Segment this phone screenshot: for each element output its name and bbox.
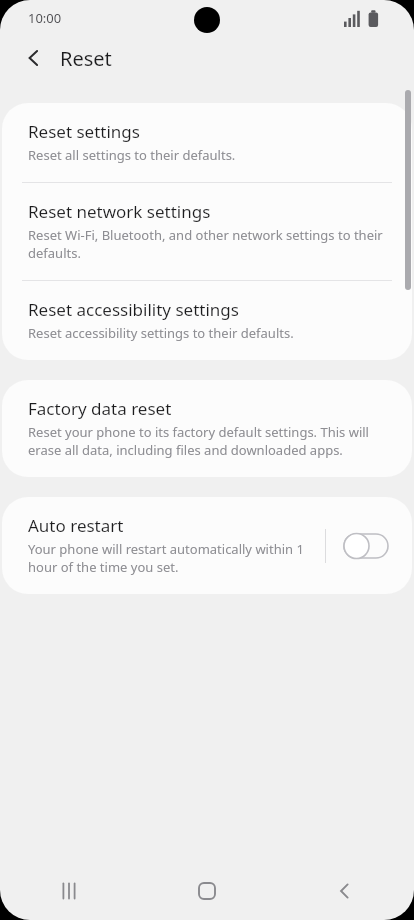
staticText: Reset accessibility settings to their de… (28, 324, 294, 342)
button[interactable]: Reset accessibility settings (2, 281, 412, 360)
staticText: Reset Wi-Fi, Bluetooth, and other networ… (28, 226, 383, 262)
staticText: Factory data reset (28, 397, 172, 420)
staticText: 10:00 (28, 9, 62, 27)
button[interactable]: Recent apps (0, 862, 138, 920)
button[interactable]: Auto restart toggle (340, 526, 392, 566)
staticText: Reset (60, 45, 112, 72)
staticText: Reset all settings to their defaults. (28, 146, 236, 164)
button[interactable]: Back (276, 862, 414, 920)
button[interactable]: Home (138, 862, 276, 920)
staticText: Reset accessibility settings (28, 298, 239, 321)
staticText: Your phone will restart automatically wi… (28, 540, 304, 576)
staticText: Auto restart (28, 514, 124, 537)
staticText: Reset settings (28, 120, 140, 143)
button[interactable]: Reset settings (2, 103, 412, 182)
button[interactable]: Back (12, 36, 56, 80)
button[interactable]: Reset network settings (2, 183, 412, 280)
button[interactable]: Auto restart (2, 497, 412, 594)
button[interactable]: Factory data reset (2, 380, 412, 477)
staticText: Reset your phone to its factory default … (28, 423, 369, 459)
staticText: Reset network settings (28, 200, 211, 223)
